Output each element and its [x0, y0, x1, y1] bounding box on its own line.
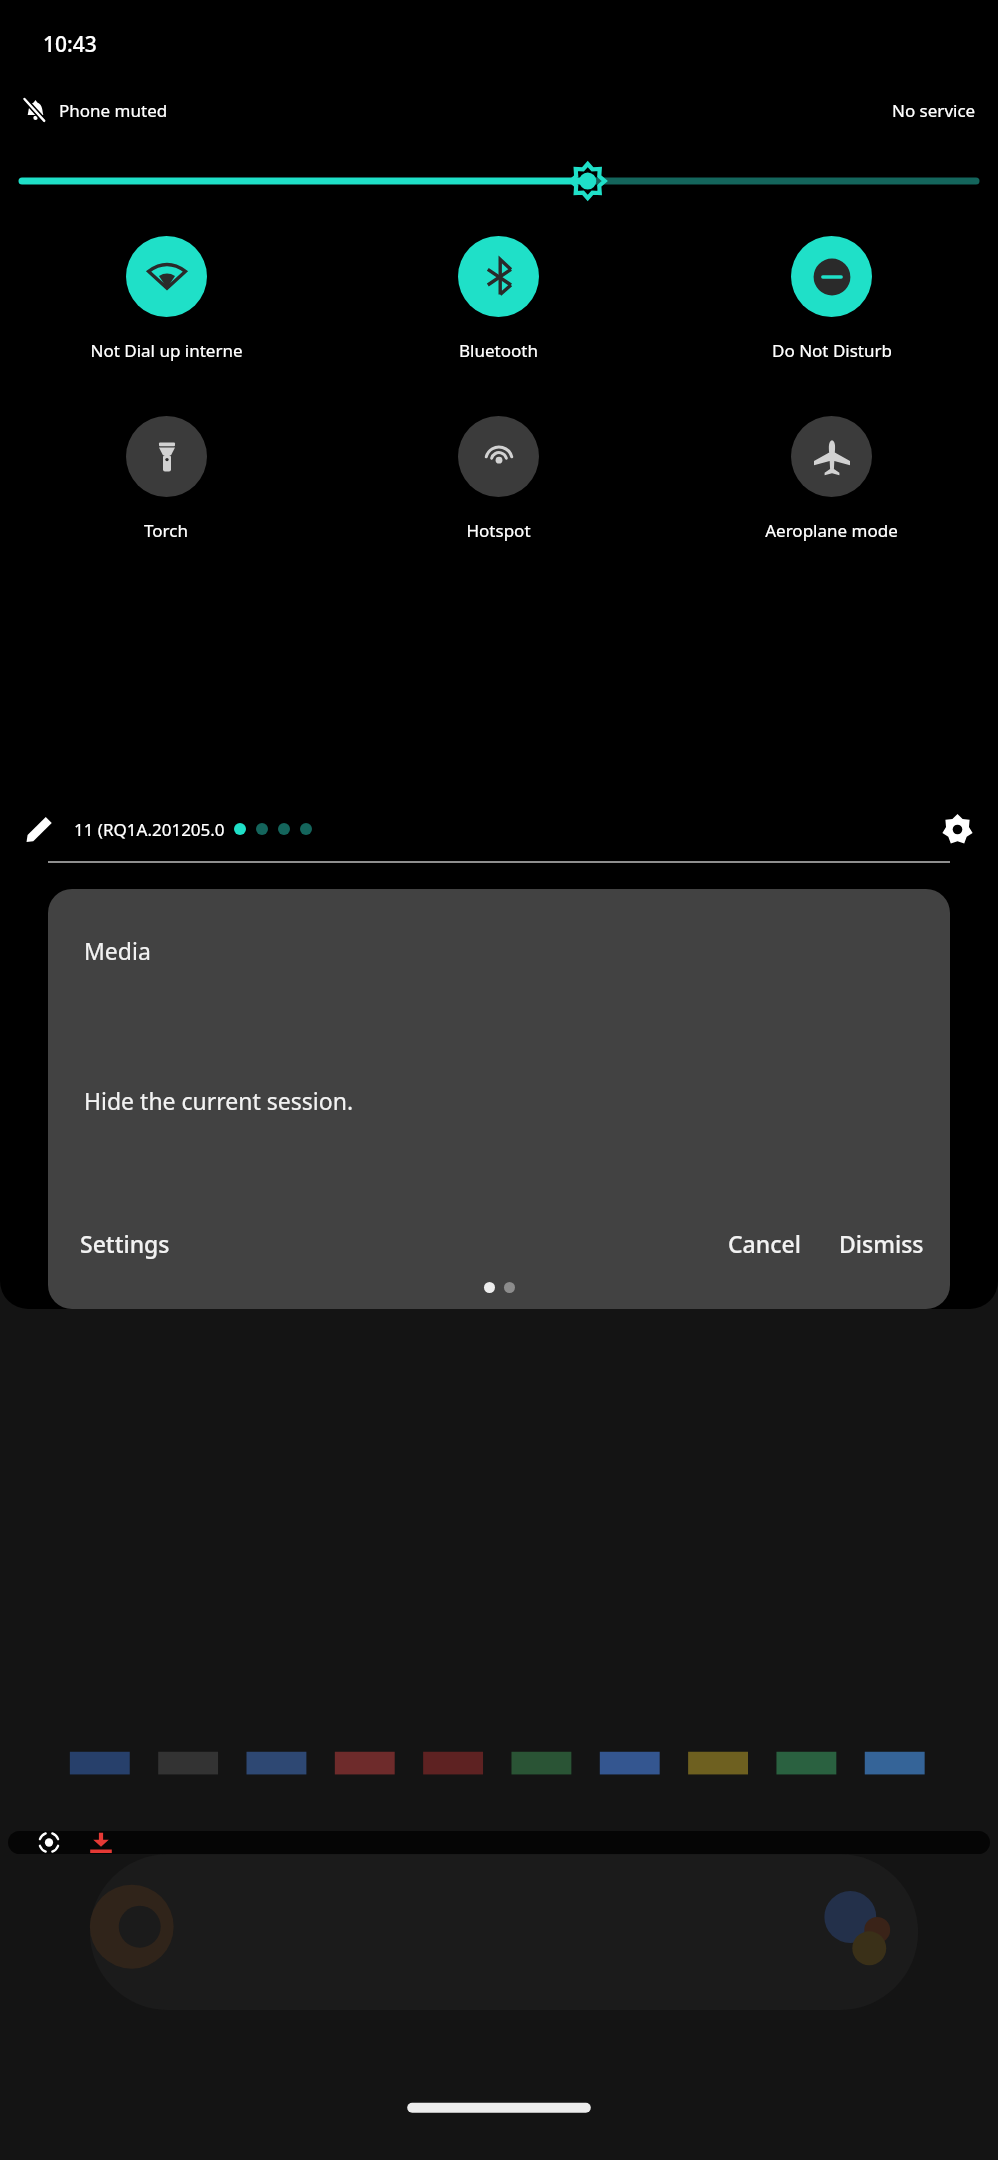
button[interactable]: Torch: [0, 416, 332, 542]
button[interactable]: Media: [48, 889, 950, 1309]
button[interactable]: Screen record: [8, 1831, 990, 1854]
button[interactable]: Edit tiles: [16, 806, 62, 852]
staticText: Do Not Disturb: [772, 339, 892, 362]
button[interactable]: Hotspot: [332, 416, 665, 542]
button[interactable]: Dismiss: [829, 1222, 934, 1265]
staticText: 11 (RQ1A.201205.011): [74, 818, 224, 841]
other: Screen record: [34, 1831, 64, 1854]
staticText: Cancel: [728, 1228, 801, 1259]
staticText: Not Dial up interne: [90, 339, 243, 362]
button[interactable]: Aeroplane mode: [665, 416, 998, 542]
staticText: Dismiss: [839, 1228, 924, 1259]
staticText: Bluetooth: [459, 339, 538, 362]
staticText: No service: [892, 99, 976, 122]
button[interactable]: Ringer muted: [18, 93, 52, 127]
other: Download: [86, 1831, 116, 1854]
staticText: Aeroplane mode: [765, 519, 898, 542]
staticText: Hotspot: [466, 519, 531, 542]
staticText: 10:43: [43, 30, 97, 59]
staticText: Phone muted: [59, 99, 168, 122]
staticText: Hide the current session.: [84, 1085, 354, 1116]
button[interactable]: Settings: [70, 1222, 180, 1265]
button[interactable]: Cancel: [718, 1222, 811, 1265]
staticText: Torch: [144, 519, 188, 542]
button[interactable]: Do Not Disturb: [665, 236, 998, 362]
button[interactable]: Settings: [932, 804, 982, 854]
staticText: Media: [84, 935, 151, 966]
button[interactable]: Not Dial up interne: [0, 236, 332, 362]
button[interactable]: Bluetooth: [332, 236, 665, 362]
button[interactable]: Brightness: [17, 158, 981, 204]
staticText: Settings: [80, 1228, 170, 1259]
